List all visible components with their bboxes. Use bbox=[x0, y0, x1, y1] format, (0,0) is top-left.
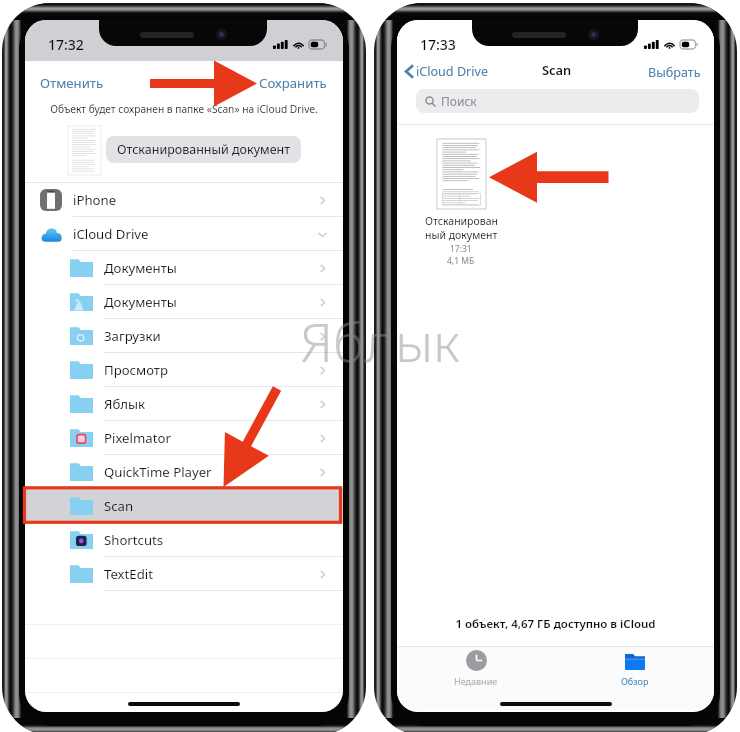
button[interactable]: Выбрать bbox=[640, 60, 709, 85]
staticText: 17:32 bbox=[48, 35, 84, 54]
staticText: Документы bbox=[104, 293, 177, 311]
button[interactable]: TextEdit bbox=[25, 557, 343, 591]
staticText: 1 объект, 4,67 ГБ доступно в iCloud bbox=[397, 616, 714, 632]
staticText: Scan bbox=[398, 61, 714, 78]
staticText: ный документ bbox=[425, 228, 498, 242]
staticText: Загрузки bbox=[104, 327, 161, 345]
staticText: 4,1 МБ bbox=[447, 255, 475, 267]
button[interactable]: Отменить bbox=[31, 69, 113, 97]
staticText: Яблык bbox=[300, 304, 460, 378]
staticText: Pixelmator bbox=[104, 429, 171, 447]
button[interactable]: Поиск bbox=[416, 89, 699, 113]
button[interactable]: Яблык bbox=[25, 387, 343, 421]
staticText: Отсканирован bbox=[425, 214, 498, 228]
button[interactable]: Отсканированный документ bbox=[106, 136, 301, 163]
staticText: Отсканированный документ bbox=[117, 141, 291, 158]
staticText: Документы bbox=[104, 259, 177, 277]
staticText: Объект будет сохранен в папке «Scan» на … bbox=[25, 102, 343, 116]
staticText: iCloud Drive bbox=[416, 63, 489, 80]
button[interactable]: Scan bbox=[25, 489, 343, 523]
staticText: 17:31 bbox=[450, 243, 472, 255]
staticText: Просмотр bbox=[104, 361, 168, 379]
staticText: Scan bbox=[104, 497, 134, 515]
button[interactable]: Документы bbox=[25, 285, 343, 319]
staticText: Сохранить bbox=[259, 74, 327, 92]
button[interactable]: iPhone bbox=[25, 183, 343, 217]
staticText: Недавние bbox=[454, 675, 498, 687]
staticText: iCloud Drive bbox=[73, 225, 149, 243]
button[interactable]: Отсканирован bbox=[422, 139, 500, 267]
staticText: Отменить bbox=[40, 74, 104, 92]
staticText: Shortcuts bbox=[104, 531, 164, 549]
staticText: 17:33 bbox=[420, 35, 456, 54]
button[interactable]: Загрузки bbox=[25, 319, 343, 353]
staticText: Поиск bbox=[441, 93, 477, 109]
staticText: Выбрать bbox=[648, 64, 701, 81]
button[interactable]: iCloud Drive bbox=[25, 217, 343, 251]
staticText: Обзор bbox=[621, 675, 649, 687]
staticText: QuickTime Player bbox=[104, 463, 212, 481]
button[interactable]: Просмотр bbox=[25, 353, 343, 387]
button[interactable]: iCloud Drive bbox=[400, 59, 494, 84]
button[interactable]: Документы bbox=[25, 251, 343, 285]
staticText: Яблык bbox=[104, 395, 146, 413]
other: Обзор bbox=[625, 654, 645, 670]
button[interactable]: QuickTime Player bbox=[25, 455, 343, 489]
button[interactable]: Shortcuts bbox=[25, 523, 343, 557]
staticText: iPhone bbox=[73, 191, 117, 209]
button[interactable]: Недавние bbox=[397, 646, 555, 692]
staticText: TextEdit bbox=[104, 565, 153, 583]
other: Недавние bbox=[466, 650, 487, 671]
button[interactable]: Сохранить bbox=[250, 69, 336, 97]
button[interactable]: Pixelmator bbox=[25, 421, 343, 455]
button[interactable]: Обзор bbox=[555, 646, 714, 692]
